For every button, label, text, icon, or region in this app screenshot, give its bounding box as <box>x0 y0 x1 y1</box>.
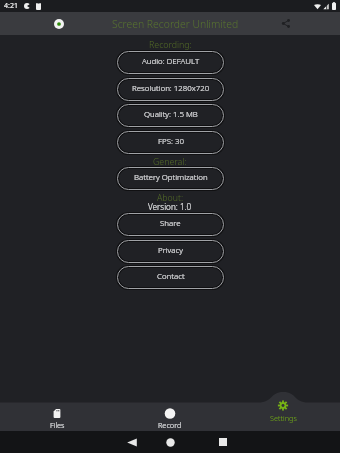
staticText: Privacy <box>158 245 183 256</box>
staticText: 4:21 <box>4 1 18 11</box>
staticText: Files <box>50 420 65 430</box>
button[interactable]: Files <box>17 404 97 431</box>
staticText: Audio: DEFAULT <box>142 56 200 67</box>
staticText: Contact <box>157 271 185 282</box>
button[interactable]: Quality: 1.5 MB <box>115 102 226 129</box>
button[interactable]: Resolution: 1280x720 <box>115 76 226 103</box>
button[interactable]: Home <box>156 435 184 449</box>
staticText: Recording: <box>149 39 192 51</box>
staticText: Settings <box>270 413 297 423</box>
staticText: Record <box>158 420 182 430</box>
button[interactable]: Contact <box>115 264 226 291</box>
button[interactable]: Record <box>130 404 210 431</box>
button[interactable]: Back <box>118 435 146 449</box>
staticText: Screen Recorder Unlimited <box>112 17 239 31</box>
button[interactable]: Settings <box>243 396 323 431</box>
staticText: About: <box>157 192 184 204</box>
button[interactable]: Share <box>115 211 226 238</box>
staticText: FPS: 30 <box>158 136 184 147</box>
staticText: Version: 1.0 <box>148 201 192 212</box>
button[interactable]: Privacy <box>115 238 226 265</box>
button[interactable]: Share <box>274 12 297 35</box>
staticText: Resolution: 1280x720 <box>132 83 210 94</box>
staticText: Battery Optimization <box>134 172 208 183</box>
button[interactable]: Recents <box>209 435 237 449</box>
button[interactable]: FPS: 30 <box>115 129 226 156</box>
staticText: General: <box>153 156 187 168</box>
staticText: Share <box>160 218 181 229</box>
staticText: Quality: 1.5 MB <box>144 109 198 120</box>
button[interactable]: Audio: DEFAULT <box>115 49 226 76</box>
button[interactable]: Battery Optimization <box>115 165 226 192</box>
